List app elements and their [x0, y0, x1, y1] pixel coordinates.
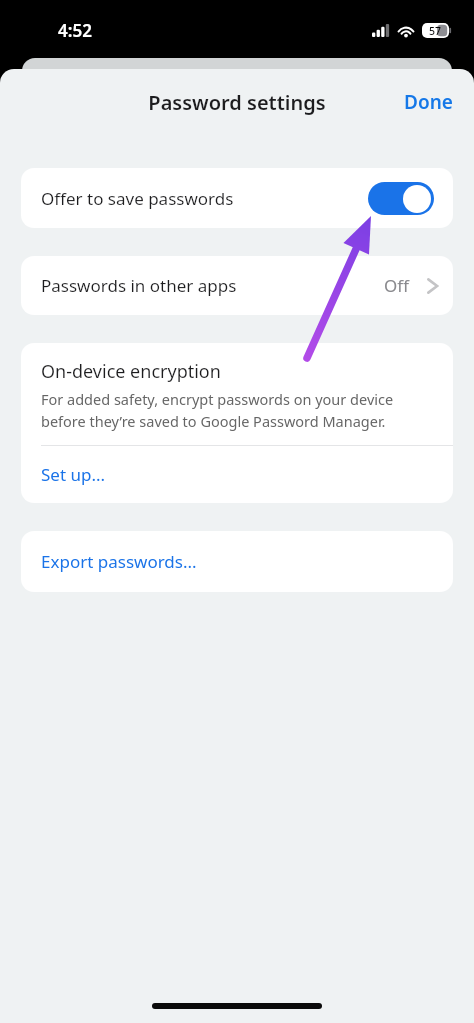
staticText: Set up... [41, 463, 106, 486]
button[interactable]: Passwords in other apps [21, 256, 453, 315]
staticText: 57 [429, 24, 442, 38]
staticText: On-device encryption [41, 359, 221, 384]
staticText: 4:52 [58, 19, 92, 42]
staticText: Off [384, 274, 409, 297]
staticText: Passwords in other apps [41, 274, 237, 297]
button[interactable]: Offer to save passwords [21, 168, 453, 228]
staticText: Offer to save passwords [41, 187, 234, 210]
button[interactable]: Set up... [21, 446, 453, 503]
staticText: For added safety, encrypt passwords on y… [41, 389, 435, 431]
button[interactable]: Offer to save passwords toggle, on [368, 182, 434, 215]
button[interactable]: Done [383, 79, 474, 125]
staticText: Done [404, 89, 453, 115]
staticText: Export passwords... [41, 550, 197, 573]
staticText: Password settings [0, 89, 474, 116]
button[interactable]: Export passwords... [21, 531, 453, 592]
